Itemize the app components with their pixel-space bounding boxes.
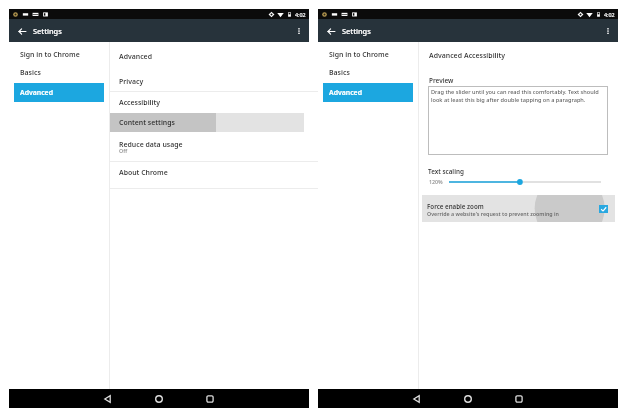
staticText: Settings [33, 26, 62, 36]
button[interactable]: Reduce data usage [110, 134, 410, 160]
button[interactable]: Back [408, 390, 426, 408]
staticText: Basics [20, 68, 41, 77]
staticText: Drag the slider until you can read this … [431, 88, 603, 104]
button[interactable] [14, 83, 104, 102]
button[interactable]: Accessibility [464, 49, 506, 63]
staticText: Accessibility [119, 98, 161, 107]
button[interactable]: Content settings [110, 113, 304, 132]
staticText: Preview [429, 76, 454, 85]
staticText: Off [119, 147, 128, 154]
button[interactable]: Back [99, 390, 117, 408]
staticText: Advanced [329, 88, 362, 97]
button[interactable]: Recents [510, 390, 528, 408]
staticText: Advanced [429, 51, 462, 60]
staticText: About Chrome [119, 168, 168, 177]
button[interactable] [110, 47, 410, 68]
staticText: Text scaling [428, 167, 464, 176]
staticText: Force enable zoom [427, 202, 484, 210]
staticText: Sign in to Chrome [20, 50, 80, 59]
staticText: Override a website's request to prevent … [427, 210, 559, 217]
button[interactable]: Back [15, 24, 30, 39]
button[interactable]: Home [459, 390, 477, 408]
staticText: Privacy [119, 77, 144, 86]
button[interactable]: Advanced [429, 49, 462, 63]
button[interactable] [110, 72, 410, 91]
button[interactable]: Force enable zoom [422, 195, 615, 222]
button[interactable]: Force enable zoom [599, 205, 608, 213]
button[interactable]: Sign in to Chrome [318, 49, 418, 63]
staticText: Advanced [119, 52, 152, 61]
button[interactable]: Back [324, 24, 339, 39]
button[interactable]: Basics [318, 67, 418, 81]
button[interactable]: Recents [201, 390, 219, 408]
staticText: Reduce data usage [119, 140, 183, 149]
staticText: Sign in to Chrome [329, 50, 389, 59]
button[interactable]: More options [292, 24, 306, 38]
staticText: Basics [329, 68, 350, 77]
staticText: 4:02 [295, 11, 306, 18]
button[interactable]: Sign in to Chrome [9, 49, 109, 63]
staticText: Accessibility [464, 51, 506, 60]
staticText: 120% [429, 178, 443, 185]
staticText: Content settings [119, 118, 175, 127]
staticText: 4:02 [604, 11, 615, 18]
staticText: Settings [342, 26, 371, 36]
staticText: Advanced [20, 88, 53, 97]
button[interactable]: Basics [9, 67, 109, 81]
button[interactable] [110, 92, 410, 113]
button[interactable]: More options [601, 24, 615, 38]
button[interactable] [323, 83, 413, 102]
button[interactable]: About Chrome [110, 162, 410, 189]
button[interactable]: Home [150, 390, 168, 408]
